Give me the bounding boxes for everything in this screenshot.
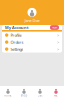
staticText: Cart: [37, 94, 42, 97]
staticText: Home: [4, 94, 12, 97]
button[interactable]: Settings: [2, 46, 62, 53]
staticText: >: [57, 39, 59, 45]
staticText: >: [57, 46, 59, 52]
button[interactable]: Me: [48, 86, 64, 100]
staticText: My Account: [5, 25, 29, 30]
button[interactable]: Profile: [2, 32, 62, 39]
button[interactable]: Orders: [2, 39, 62, 46]
staticText: Shop: [20, 94, 27, 97]
button[interactable]: Cart: [32, 86, 48, 100]
staticText: Jane Doe: [24, 18, 39, 23]
staticText: NEW: [52, 26, 57, 29]
button[interactable]: Home: [0, 86, 16, 100]
staticText: Orders: [10, 39, 23, 45]
button[interactable]: Shop: [16, 86, 32, 100]
staticText: Profile: [10, 32, 21, 38]
staticText: >: [57, 32, 59, 38]
staticText: Settings: [10, 46, 23, 52]
staticText: Me: [54, 94, 58, 97]
